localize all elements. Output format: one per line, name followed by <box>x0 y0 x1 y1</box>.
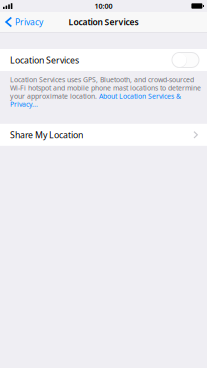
staticText: Wi-Fi hotspot and mobile phone mast loca… <box>10 83 201 93</box>
staticText: Location Services <box>68 16 138 28</box>
button[interactable]: About Location Services & <box>99 91 181 101</box>
staticText: Share My Location <box>10 129 83 141</box>
staticText: your approximate location. <box>10 91 99 101</box>
staticText: 10:00 <box>94 1 112 11</box>
button[interactable]: Privacy <box>0 12 47 32</box>
button[interactable]: Location Services <box>172 52 199 67</box>
staticText: Privacy <box>15 16 43 28</box>
staticText: Location Services <box>10 54 79 66</box>
staticText: Privacy... <box>10 99 38 109</box>
staticText: About Location Services & <box>99 91 181 101</box>
staticText: Location Services uses GPS, Bluetooth, a… <box>10 75 194 84</box>
button[interactable]: Share My Location <box>0 124 207 146</box>
button[interactable]: Privacy... <box>10 99 38 109</box>
